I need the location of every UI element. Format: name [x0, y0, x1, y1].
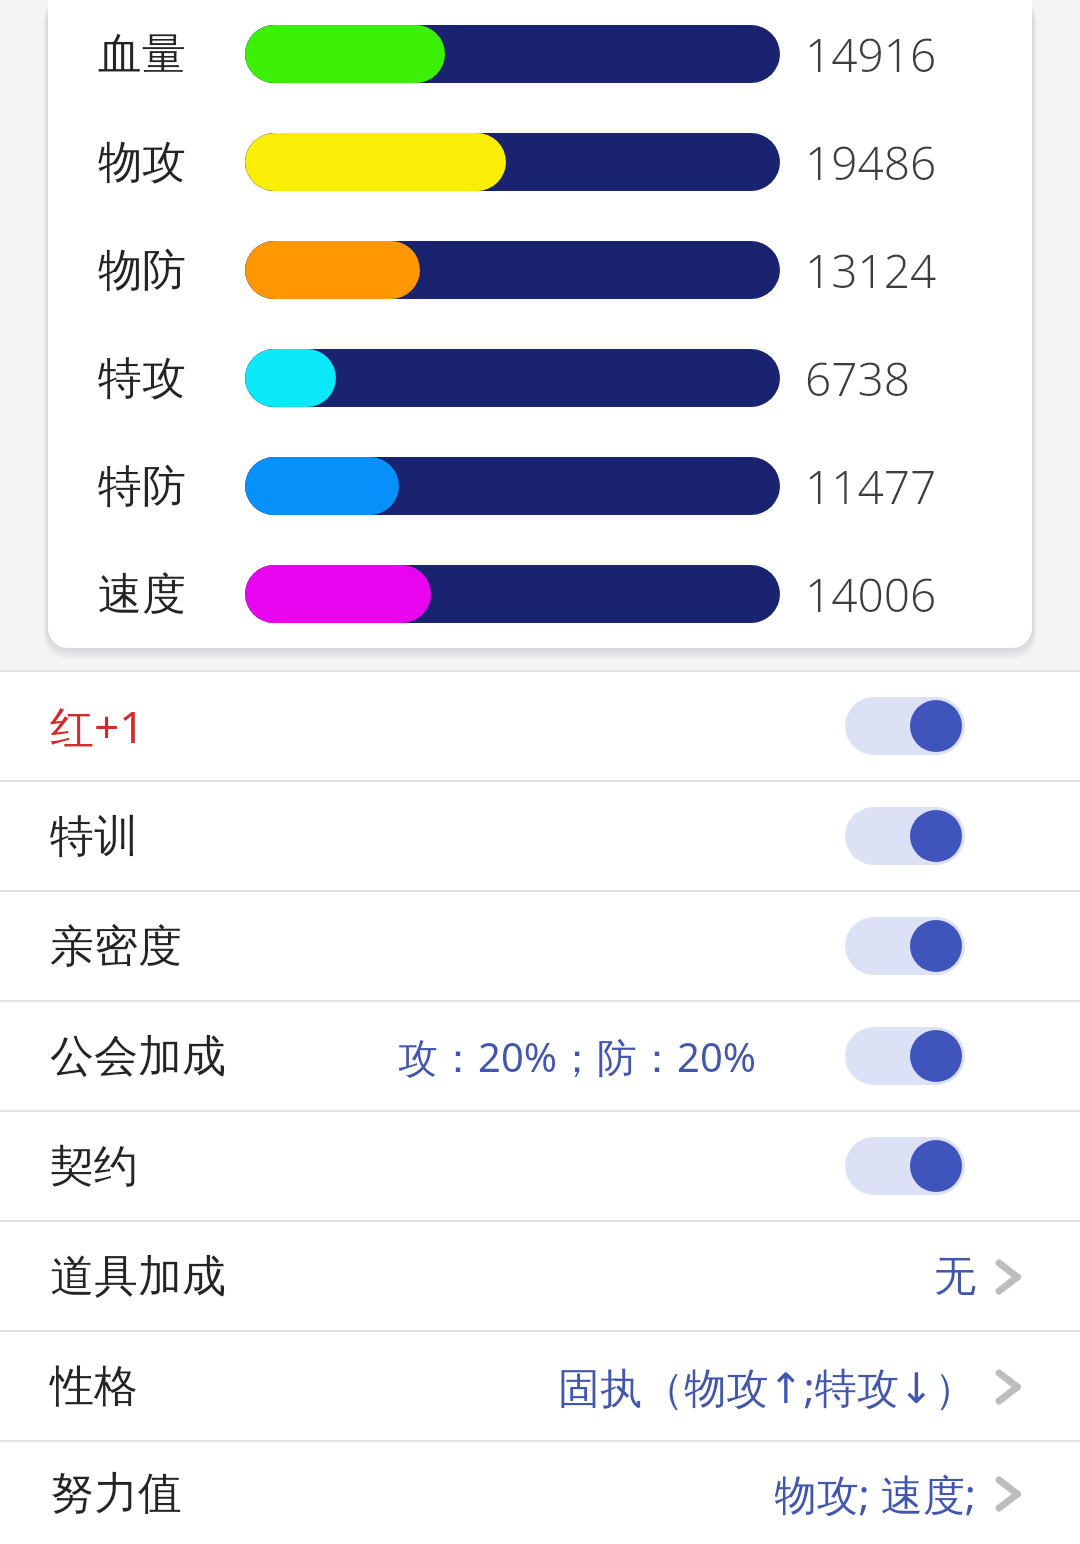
staticText: 特防 [98, 459, 186, 514]
staticText: 努力值 [50, 1466, 182, 1521]
button[interactable]: Toggle [845, 1027, 965, 1085]
staticText: 血量 [98, 27, 186, 82]
other: Open [996, 1472, 1022, 1516]
staticText: 道具加成 [50, 1249, 226, 1304]
staticText: 固执（物攻↑;特攻↓） [558, 1358, 976, 1415]
button[interactable]: 努力值 [0, 1442, 1080, 1544]
button[interactable]: 道具加成 [0, 1222, 1080, 1330]
staticText: 19486 [805, 131, 937, 194]
button[interactable]: 亲密度 [0, 892, 1080, 1000]
staticText: 物攻 [98, 135, 186, 190]
staticText: 速度 [98, 567, 186, 622]
staticText: 攻：20%；防：20% [398, 1029, 756, 1084]
staticText: 11477 [805, 455, 937, 518]
button[interactable]: 特训 [0, 782, 1080, 890]
staticText: 物攻; 速度; [774, 1465, 976, 1522]
staticText: 物防 [98, 243, 186, 298]
staticText: 特攻 [98, 351, 186, 406]
staticText: 性格 [50, 1359, 138, 1414]
staticText: 14006 [805, 563, 937, 626]
button[interactable]: 性格 [0, 1332, 1080, 1440]
staticText: 特训 [50, 809, 138, 864]
staticText: 6738 [805, 347, 911, 410]
staticText: 14916 [805, 23, 937, 86]
button[interactable]: 契约 [0, 1112, 1080, 1220]
staticText: 13124 [805, 239, 937, 302]
staticText: 红+1 [50, 696, 145, 756]
staticText: 无 [934, 1250, 976, 1303]
button[interactable]: Toggle [845, 807, 965, 865]
staticText: 亲密度 [50, 919, 182, 974]
button[interactable]: 红+1 [0, 672, 1080, 780]
other: Open [996, 1365, 1022, 1409]
button[interactable]: Toggle [845, 917, 965, 975]
button[interactable]: 公会加成 [0, 1002, 1080, 1110]
other: Open [996, 1255, 1022, 1299]
button[interactable]: Toggle [845, 1137, 965, 1195]
staticText: 公会加成 [50, 1029, 226, 1084]
button[interactable]: Toggle [845, 697, 965, 755]
staticText: 契约 [50, 1139, 138, 1194]
